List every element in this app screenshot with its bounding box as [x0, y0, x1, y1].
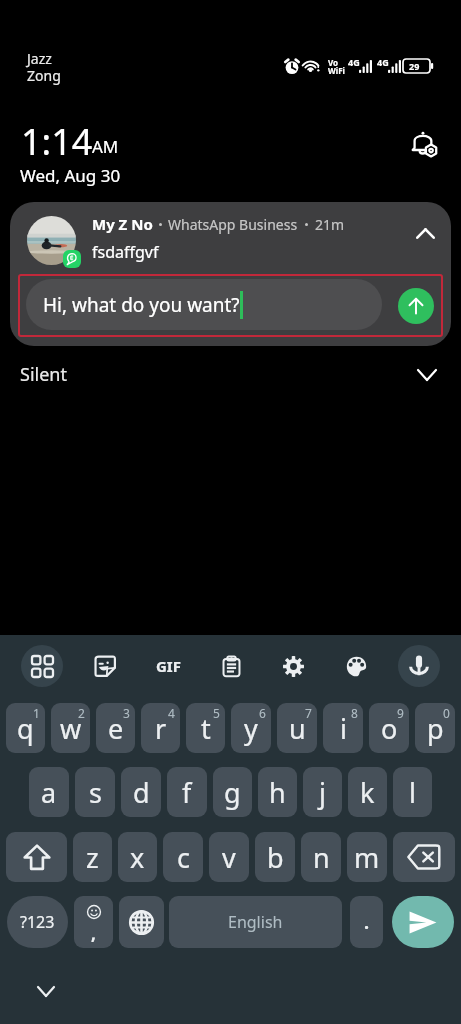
staticText: 6: [259, 705, 266, 721]
button[interactable]: Notification settings: [404, 124, 442, 162]
button[interactable]: s: [75, 767, 115, 817]
button[interactable]: Emoji and comma: [74, 896, 113, 948]
staticText: .: [364, 910, 370, 935]
staticText: ,: [91, 922, 96, 945]
button[interactable]: Send reply: [398, 288, 434, 324]
button[interactable]: x: [118, 832, 157, 882]
staticText: English: [228, 911, 283, 933]
button[interactable]: Send message: [392, 896, 454, 948]
button[interactable]: q: [6, 703, 45, 753]
staticText: u: [289, 710, 306, 747]
staticText: 8: [351, 705, 358, 721]
staticText: ?123: [20, 911, 55, 933]
button[interactable]: GIF: [147, 645, 189, 687]
staticText: Jazz: [27, 49, 52, 68]
staticText: 29: [409, 60, 420, 72]
button[interactable]: Clipboard: [210, 645, 252, 687]
button[interactable]: l: [393, 767, 432, 817]
button[interactable]: a: [29, 767, 69, 817]
button[interactable]: b: [255, 832, 295, 882]
staticText: b: [267, 839, 284, 876]
staticText: w: [60, 710, 82, 747]
button[interactable]: Shift: [6, 832, 67, 882]
button[interactable]: Themes: [335, 645, 377, 687]
button[interactable]: i: [323, 703, 363, 753]
button[interactable]: z: [73, 832, 112, 882]
staticText: Wed, Aug 30: [20, 164, 121, 187]
staticText: 4G: [377, 56, 389, 68]
button[interactable]: Hi, what do you want?: [26, 279, 382, 330]
staticText: v: [222, 839, 236, 876]
staticText: q: [17, 710, 34, 747]
staticText: s: [89, 774, 102, 811]
staticText: 1:14: [21, 117, 93, 166]
button[interactable]: n: [301, 832, 341, 882]
staticText: r: [155, 710, 167, 747]
button[interactable]: English: [169, 896, 342, 948]
staticText: a: [41, 774, 57, 811]
staticText: GIF: [156, 656, 181, 676]
staticText: t: [201, 710, 211, 747]
staticText: Vo: [328, 57, 339, 68]
staticText: i: [340, 710, 347, 747]
staticText: c: [177, 839, 190, 876]
staticText: y: [244, 710, 258, 747]
staticText: m: [354, 839, 380, 876]
staticText: p: [427, 710, 444, 747]
button[interactable]: f: [167, 767, 207, 817]
staticText: WiFi: [328, 65, 345, 76]
staticText: AM: [92, 135, 119, 158]
staticText: fsdaffgvf: [92, 241, 159, 263]
staticText: h: [269, 774, 286, 811]
staticText: 4G: [348, 56, 360, 68]
button[interactable]: g: [213, 767, 252, 817]
staticText: g: [224, 774, 241, 811]
staticText: 3: [123, 705, 130, 721]
button[interactable]: j: [303, 767, 342, 817]
button[interactable]: v: [209, 832, 249, 882]
staticText: 9: [397, 705, 404, 721]
button[interactable]: Apps: [21, 645, 63, 687]
button[interactable]: k: [348, 767, 387, 817]
staticText: n: [313, 839, 330, 876]
button[interactable]: Collapse: [406, 214, 444, 252]
staticText: f: [182, 774, 192, 811]
button[interactable]: Sticker: [84, 645, 126, 687]
button[interactable]: t: [186, 703, 225, 753]
button[interactable]: d: [121, 767, 161, 817]
button[interactable]: h: [258, 767, 297, 817]
staticText: 2: [78, 705, 85, 721]
button[interactable]: Change language: [119, 896, 164, 948]
staticText: 21m: [315, 215, 345, 234]
button[interactable]: Voice input: [398, 645, 440, 687]
button[interactable]: r: [141, 703, 180, 753]
staticText: d: [133, 774, 150, 811]
staticText: j: [319, 774, 326, 811]
button[interactable]: y: [231, 703, 271, 753]
staticText: 7: [305, 705, 312, 721]
button[interactable]: m: [347, 832, 387, 882]
button[interactable]: c: [163, 832, 203, 882]
staticText: 5: [213, 705, 220, 721]
button[interactable]: p: [415, 703, 455, 753]
button[interactable]: e: [96, 703, 135, 753]
button[interactable]: w: [51, 703, 90, 753]
staticText: Silent: [20, 362, 67, 387]
staticText: Zong: [27, 66, 61, 85]
button[interactable]: u: [277, 703, 317, 753]
staticText: k: [360, 774, 375, 811]
staticText: 4: [168, 705, 175, 721]
button[interactable]: Silent: [0, 352, 461, 398]
staticText: Hi, what do you want?: [43, 292, 240, 318]
staticText: z: [86, 839, 99, 876]
button[interactable]: ?123: [7, 896, 68, 948]
staticText: 0: [443, 705, 450, 721]
staticText: x: [130, 839, 145, 876]
staticText: My Z No: [92, 214, 153, 234]
button[interactable]: Hide keyboard: [30, 975, 62, 1007]
button[interactable]: Settings: [272, 645, 314, 687]
button[interactable]: .: [350, 896, 383, 948]
staticText: e: [108, 710, 124, 747]
button[interactable]: o: [369, 703, 409, 753]
button[interactable]: Backspace: [393, 832, 455, 882]
